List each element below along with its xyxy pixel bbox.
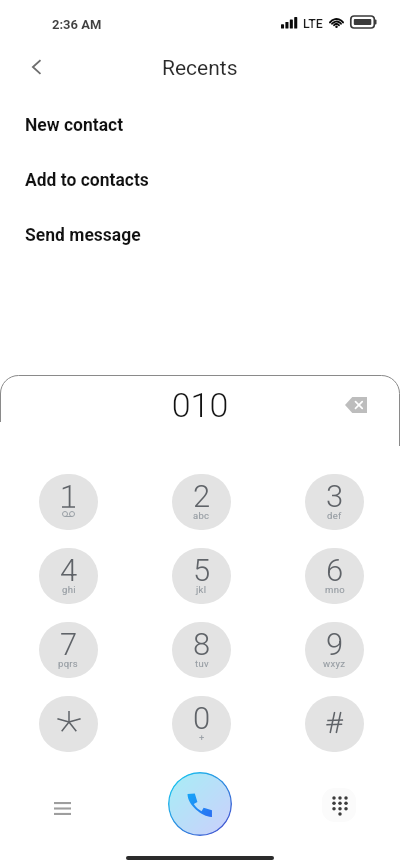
- button[interactable]: 8: [172, 622, 231, 678]
- staticText: 5: [193, 552, 211, 588]
- staticText: 6: [326, 552, 344, 588]
- staticText: def: [327, 510, 342, 521]
- staticText: Recents: [162, 56, 238, 81]
- staticText: 1: [60, 478, 78, 514]
- staticText: Send message: [25, 225, 141, 246]
- button[interactable]: 3: [305, 474, 364, 530]
- button[interactable]: Backspace: [336, 385, 376, 425]
- staticText: 010: [0, 385, 400, 425]
- button[interactable]: 5: [172, 548, 231, 604]
- staticText: jkl: [196, 584, 207, 595]
- button[interactable]: 4: [39, 548, 98, 604]
- staticText: 3: [326, 478, 344, 514]
- button[interactable]: 7: [39, 622, 98, 678]
- button[interactable]: Send message: [0, 208, 400, 263]
- button[interactable]: [305, 696, 364, 752]
- staticText: wxyz: [323, 658, 346, 669]
- button[interactable]: Add to contacts: [0, 153, 400, 208]
- button[interactable]: 9: [305, 622, 364, 678]
- button[interactable]: 2: [172, 474, 231, 530]
- button[interactable]: Call: [168, 772, 232, 836]
- button[interactable]: Keypad: [319, 785, 359, 825]
- staticText: Add to contacts: [25, 170, 149, 191]
- staticText: 7: [60, 626, 78, 662]
- staticText: tuv: [195, 658, 209, 669]
- staticText: abc: [193, 510, 210, 521]
- button[interactable]: New contact: [0, 98, 400, 153]
- staticText: New contact: [25, 115, 124, 136]
- button[interactable]: Back: [14, 47, 56, 89]
- staticText: 0: [193, 700, 211, 736]
- staticText: 2: [193, 478, 211, 514]
- staticText: 9: [326, 626, 344, 662]
- button[interactable]: [39, 696, 98, 752]
- staticText: +: [199, 732, 205, 743]
- staticText: 4: [60, 552, 78, 588]
- staticText: ghi: [62, 584, 76, 595]
- staticText: pqrs: [58, 658, 79, 669]
- staticText: mno: [325, 584, 345, 595]
- button[interactable]: 0: [172, 696, 231, 752]
- button[interactable]: Call log: [42, 788, 82, 828]
- button[interactable]: 6: [305, 548, 364, 604]
- staticText: 8: [193, 626, 211, 662]
- staticText: LTE: [303, 16, 323, 31]
- button[interactable]: 1: [39, 474, 98, 530]
- staticText: 2:36 AM: [52, 17, 102, 32]
